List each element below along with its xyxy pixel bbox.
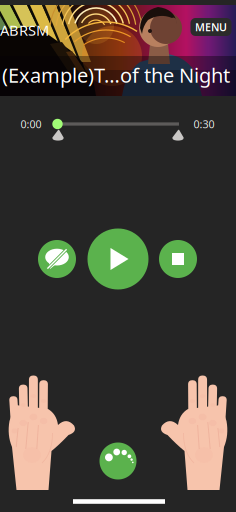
staticText: 0:00: [20, 117, 41, 131]
staticText: MENU: [195, 20, 227, 34]
staticText: 0:30: [193, 117, 214, 131]
button[interactable]: Stop: [159, 240, 197, 278]
staticText: (Example)T…of the Night: [2, 62, 230, 88]
staticText: ABRSM: [0, 20, 49, 40]
button[interactable]: MENU: [190, 18, 231, 36]
button[interactable]: Play: [87, 228, 148, 289]
button[interactable]: Voice off: [38, 240, 76, 278]
button[interactable]: Tap to set tempo: [99, 442, 136, 479]
